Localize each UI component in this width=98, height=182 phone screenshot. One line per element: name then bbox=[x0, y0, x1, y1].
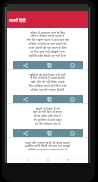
button[interactable]: Share bbox=[21, 61, 29, 69]
button[interactable]: Back bbox=[25, 157, 31, 163]
staticText: जीवन में सफलता पाने के लिए कठिन परिश्रम … bbox=[11, 30, 84, 58]
staticText: खुशियों का सबसे बड़ा राज़ यही है कि जो म… bbox=[11, 72, 84, 92]
button[interactable]: Copy bbox=[45, 61, 53, 69]
button[interactable]: Copy bbox=[45, 95, 53, 103]
staticText: दोस्ती वो रिश्ता है जो खून से नहीं दिल स… bbox=[11, 106, 84, 126]
button[interactable]: Share bbox=[21, 95, 29, 103]
button[interactable]: WhatsApp bbox=[68, 95, 76, 103]
button[interactable]: Copy bbox=[45, 129, 53, 137]
button[interactable]: Share bbox=[21, 129, 29, 137]
button[interactable]: Home bbox=[45, 157, 51, 163]
button[interactable]: Recents bbox=[65, 157, 71, 163]
staticText: वक्त और हालात कभी भी बदल सकते इसलिए कभी … bbox=[11, 140, 84, 150]
staticText: शायरी हिंदी bbox=[9, 18, 26, 23]
button[interactable]: WhatsApp bbox=[68, 129, 76, 137]
button[interactable]: WhatsApp bbox=[68, 61, 76, 69]
